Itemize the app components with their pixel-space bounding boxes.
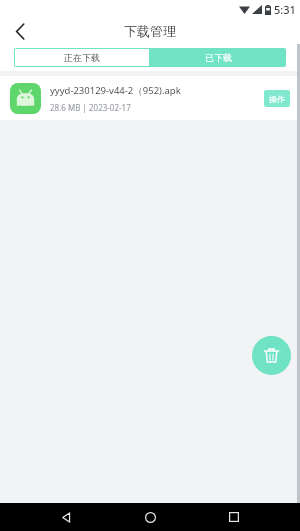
- button[interactable]: yyyd-230129-v44-2（952).apk: [0, 76, 300, 120]
- button[interactable]: Back: [48, 503, 84, 531]
- button[interactable]: Recents: [216, 503, 252, 531]
- button[interactable]: Back: [8, 19, 32, 43]
- staticText: 操作: [269, 94, 285, 104]
- staticText: 28.6 MB | 2023-02-17: [50, 102, 131, 113]
- staticText: 正在下载: [64, 52, 100, 63]
- button[interactable]: 操作: [264, 90, 290, 107]
- staticText: 5:31: [274, 2, 296, 17]
- staticText: 下载管理: [124, 23, 176, 39]
- staticText: 已下载: [205, 52, 232, 63]
- button[interactable]: Delete: [252, 336, 291, 375]
- button[interactable]: 已下载: [150, 48, 286, 67]
- button[interactable]: Home: [132, 503, 168, 531]
- button[interactable]: 正在下载: [14, 48, 150, 67]
- staticText: yyyd-230129-v44-2（952).apk: [50, 84, 181, 97]
